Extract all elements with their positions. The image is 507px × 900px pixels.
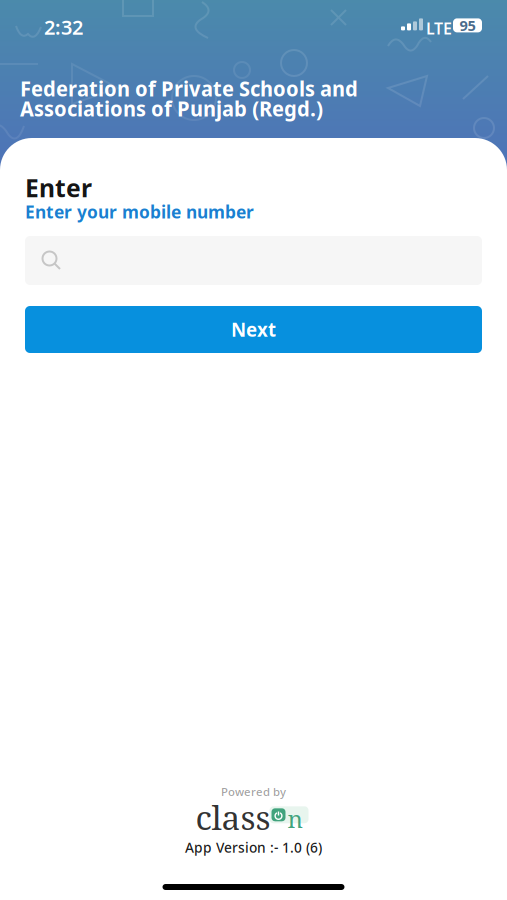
staticText: class xyxy=(195,794,270,840)
staticText: Powered by xyxy=(221,784,286,799)
staticText: LTE xyxy=(426,17,452,39)
button[interactable]: Next xyxy=(25,306,482,353)
staticText: 2:32 xyxy=(44,13,83,41)
staticText: Federation of Private Schools and xyxy=(20,73,358,103)
staticText: n xyxy=(287,802,302,835)
staticText: Enter xyxy=(25,171,92,205)
staticText: 95 xyxy=(459,15,475,35)
staticText: Associations of Punjab (Regd.) xyxy=(20,93,323,123)
staticText: Next xyxy=(231,317,276,342)
staticText: App Version :- 1.0 (6) xyxy=(185,838,322,857)
staticText: Enter your mobile number xyxy=(25,200,254,224)
